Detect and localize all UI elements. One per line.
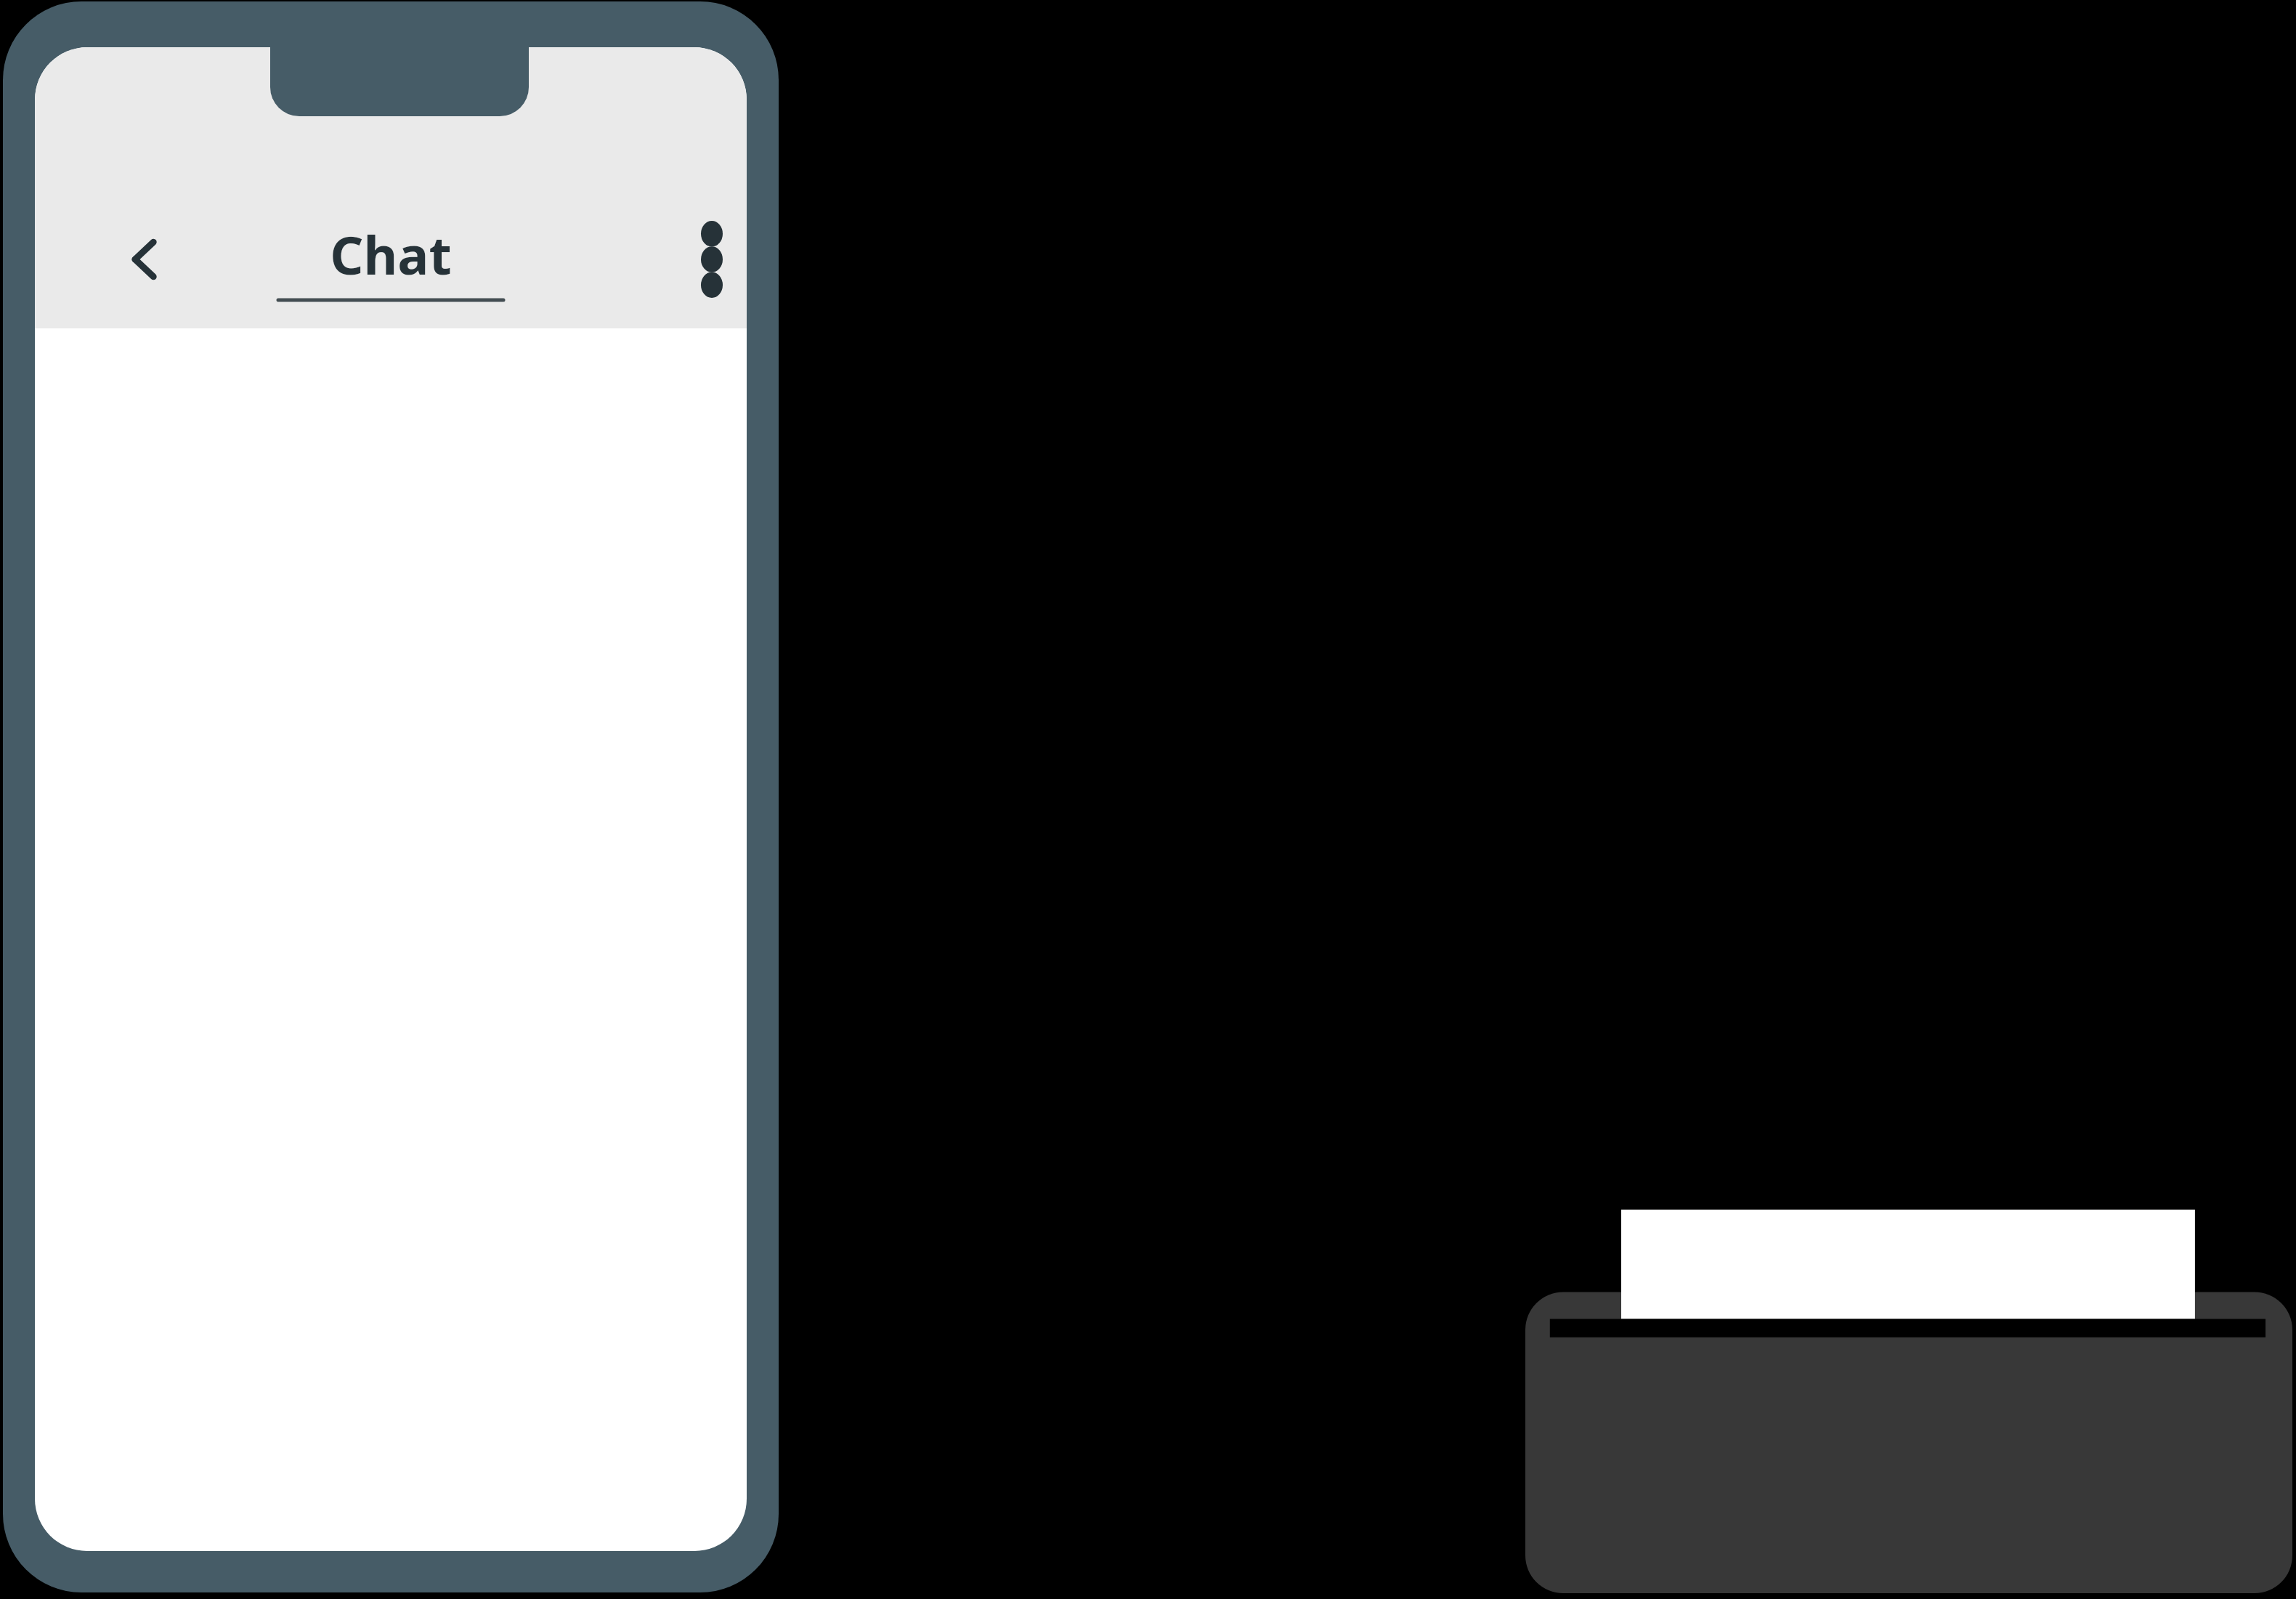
button[interactable]: Back (94, 209, 196, 310)
button[interactable]: Chat (253, 209, 529, 317)
staticText: Chat (253, 219, 529, 284)
button[interactable]: More options (661, 209, 747, 310)
button[interactable]: Print (1525, 1210, 2292, 1593)
